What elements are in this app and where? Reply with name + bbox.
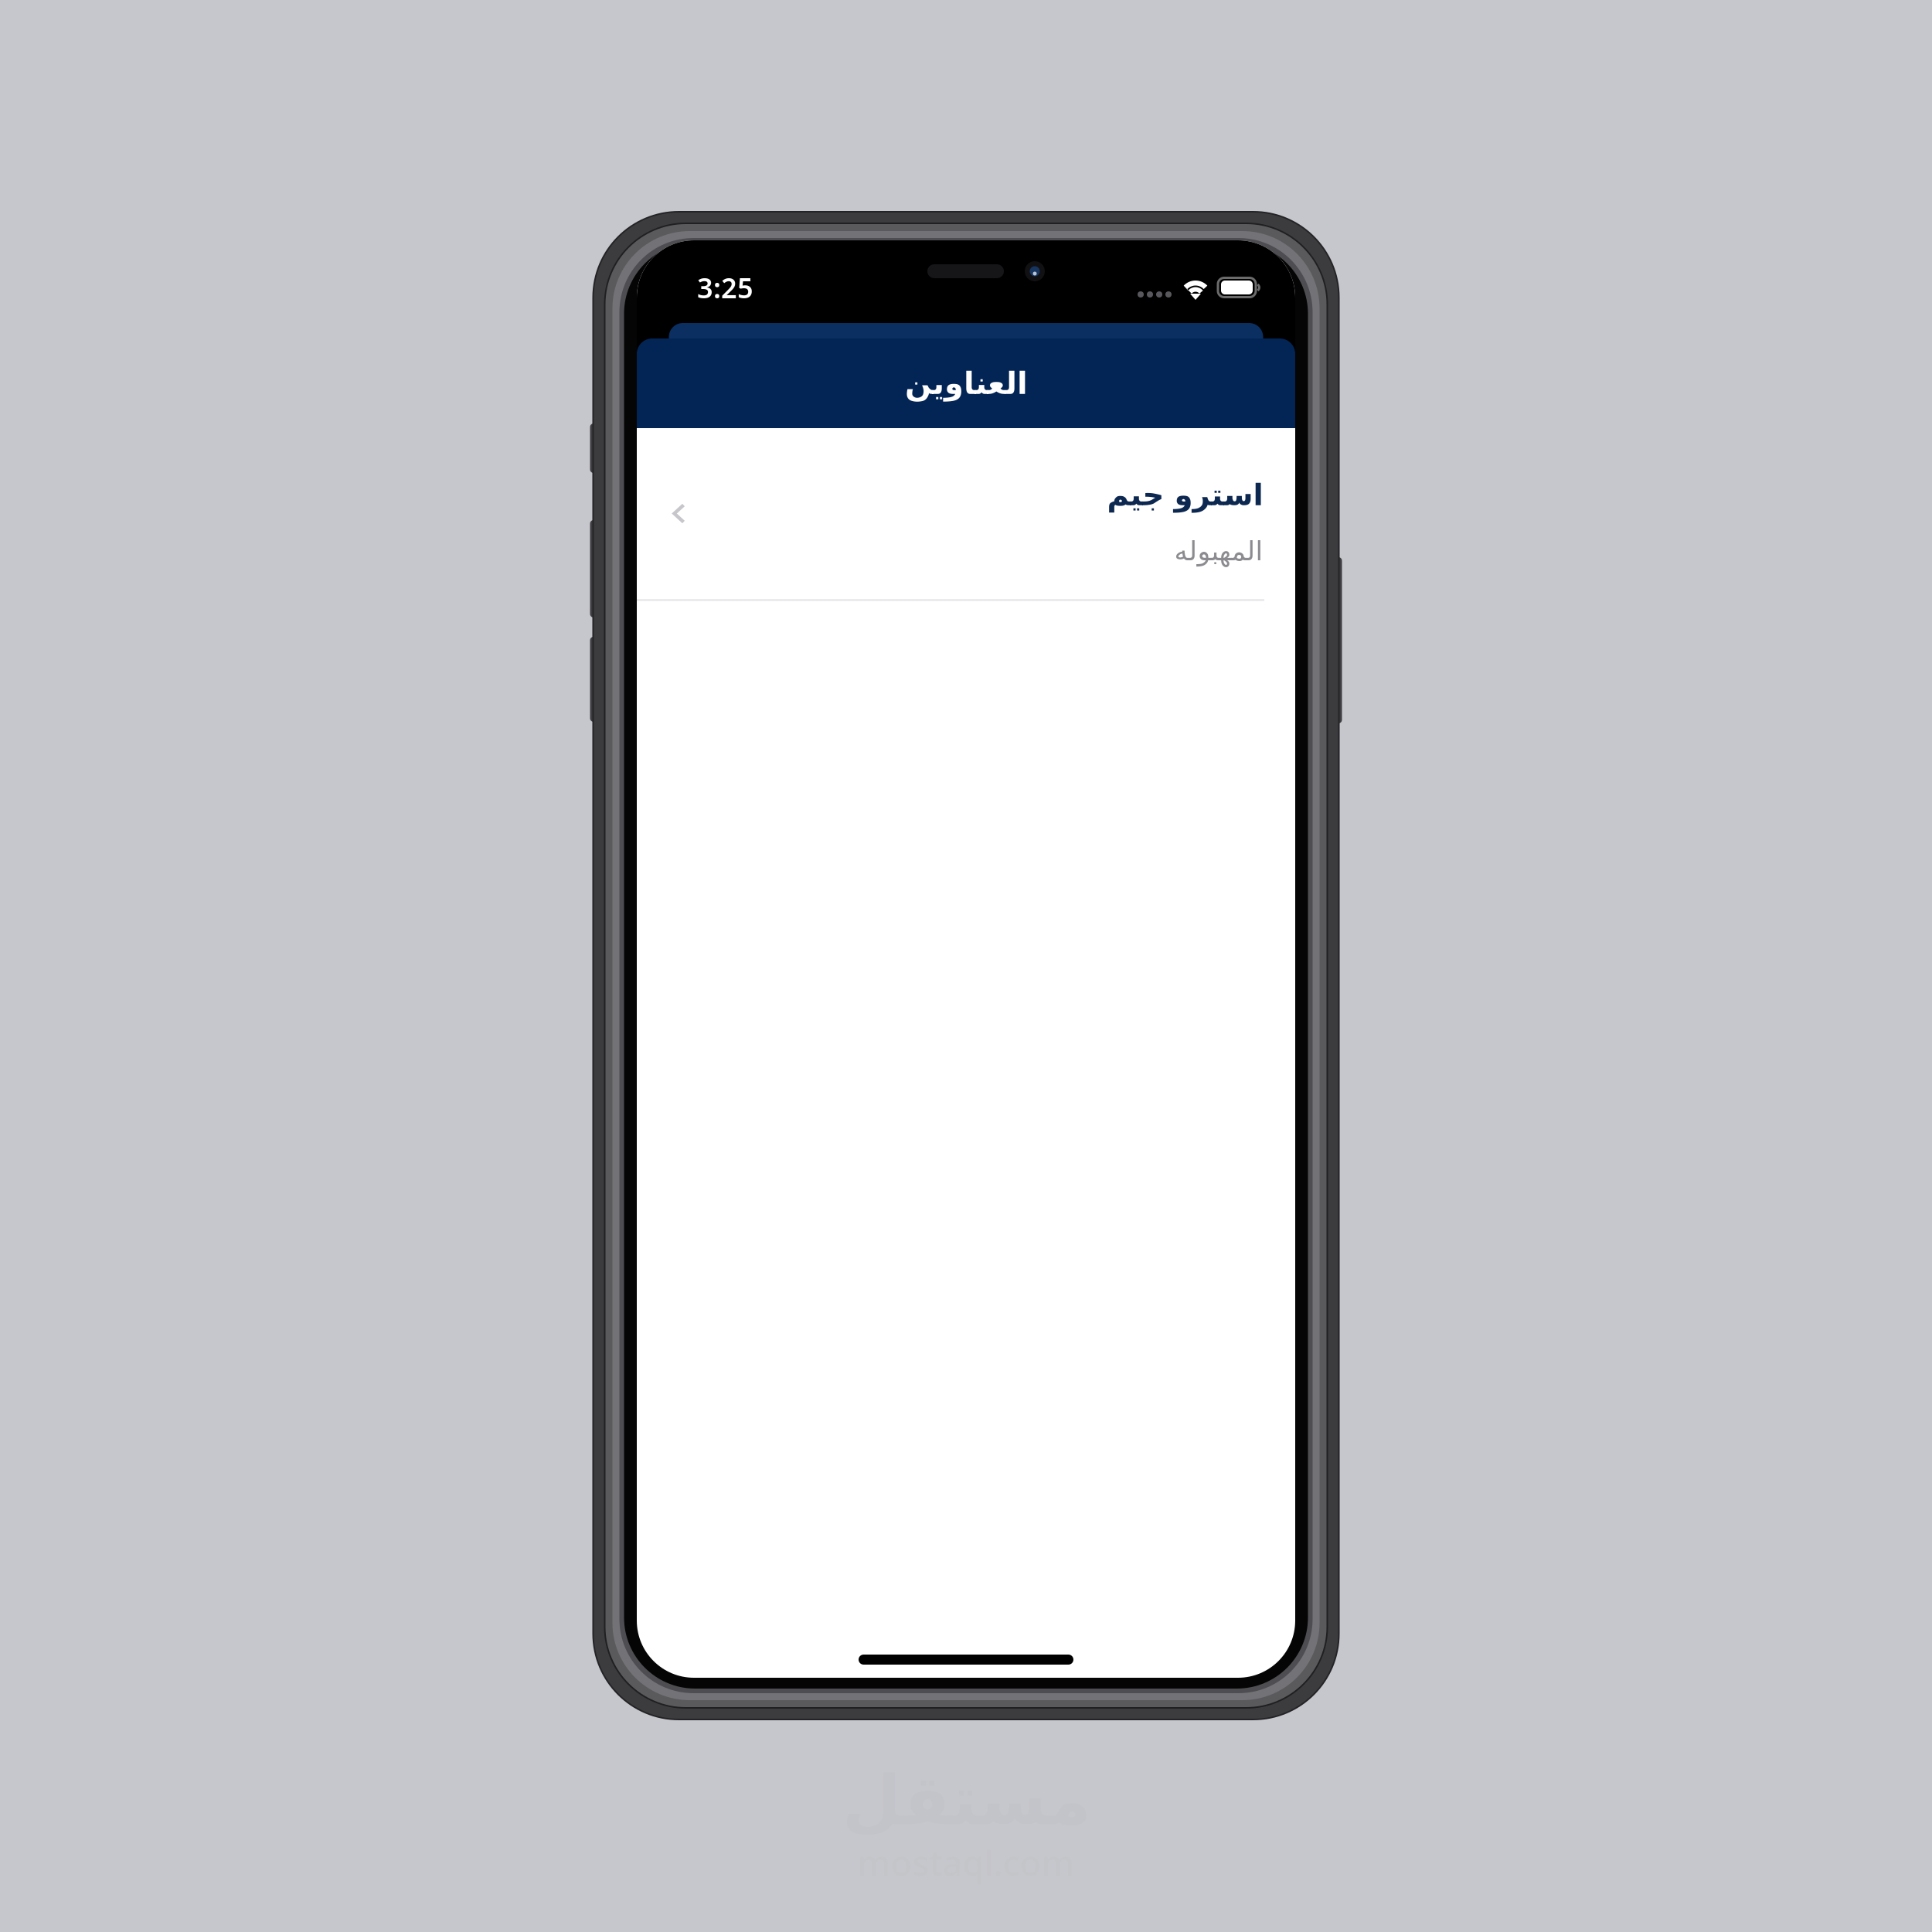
staticText: المهبوله: [1174, 536, 1263, 566]
button[interactable]: استرو جيم: [637, 428, 1295, 601]
staticText: استرو جيم: [1107, 478, 1263, 512]
staticText: العناوين: [905, 366, 1027, 401]
staticText: 3:25: [697, 269, 753, 306]
